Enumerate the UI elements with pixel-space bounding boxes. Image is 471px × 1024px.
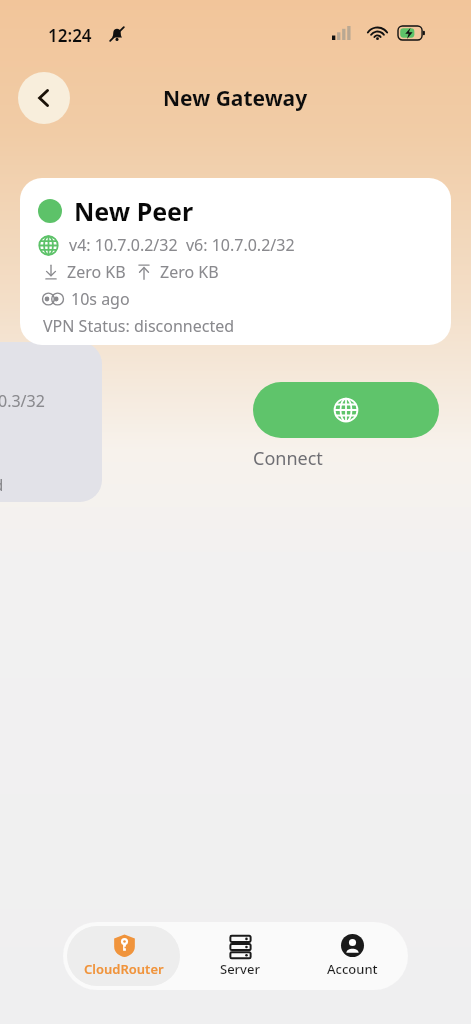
button[interactable]: Back <box>18 72 70 124</box>
staticText: Zero KB <box>67 261 126 283</box>
staticText: ected <box>0 474 4 496</box>
staticText: CloudRouter <box>84 960 164 978</box>
staticText: v4: 10.7.0.2/32 v6: 10.7.0.2/32 <box>69 234 295 256</box>
staticText: New Peer <box>74 194 194 228</box>
button[interactable]: 10.7.0.3/32 <box>0 342 102 502</box>
staticText: 10s ago <box>71 288 130 310</box>
button[interactable]: CloudRouter <box>67 926 180 986</box>
button[interactable]: New Peer <box>20 178 451 345</box>
staticText: 12:24 <box>48 24 92 47</box>
staticText: 10.7.0.3/32 <box>0 390 45 412</box>
button[interactable]: Server <box>184 922 296 990</box>
staticText: Server <box>220 960 260 978</box>
staticText: Connect <box>253 446 439 471</box>
staticText: Account <box>327 960 378 978</box>
staticText: VPN Status: disconnected <box>43 315 235 337</box>
staticText: Zero KB <box>160 261 219 283</box>
button[interactable]: Connect <box>253 382 439 438</box>
button[interactable]: Account <box>296 922 408 990</box>
staticText: New Gateway <box>163 84 308 113</box>
